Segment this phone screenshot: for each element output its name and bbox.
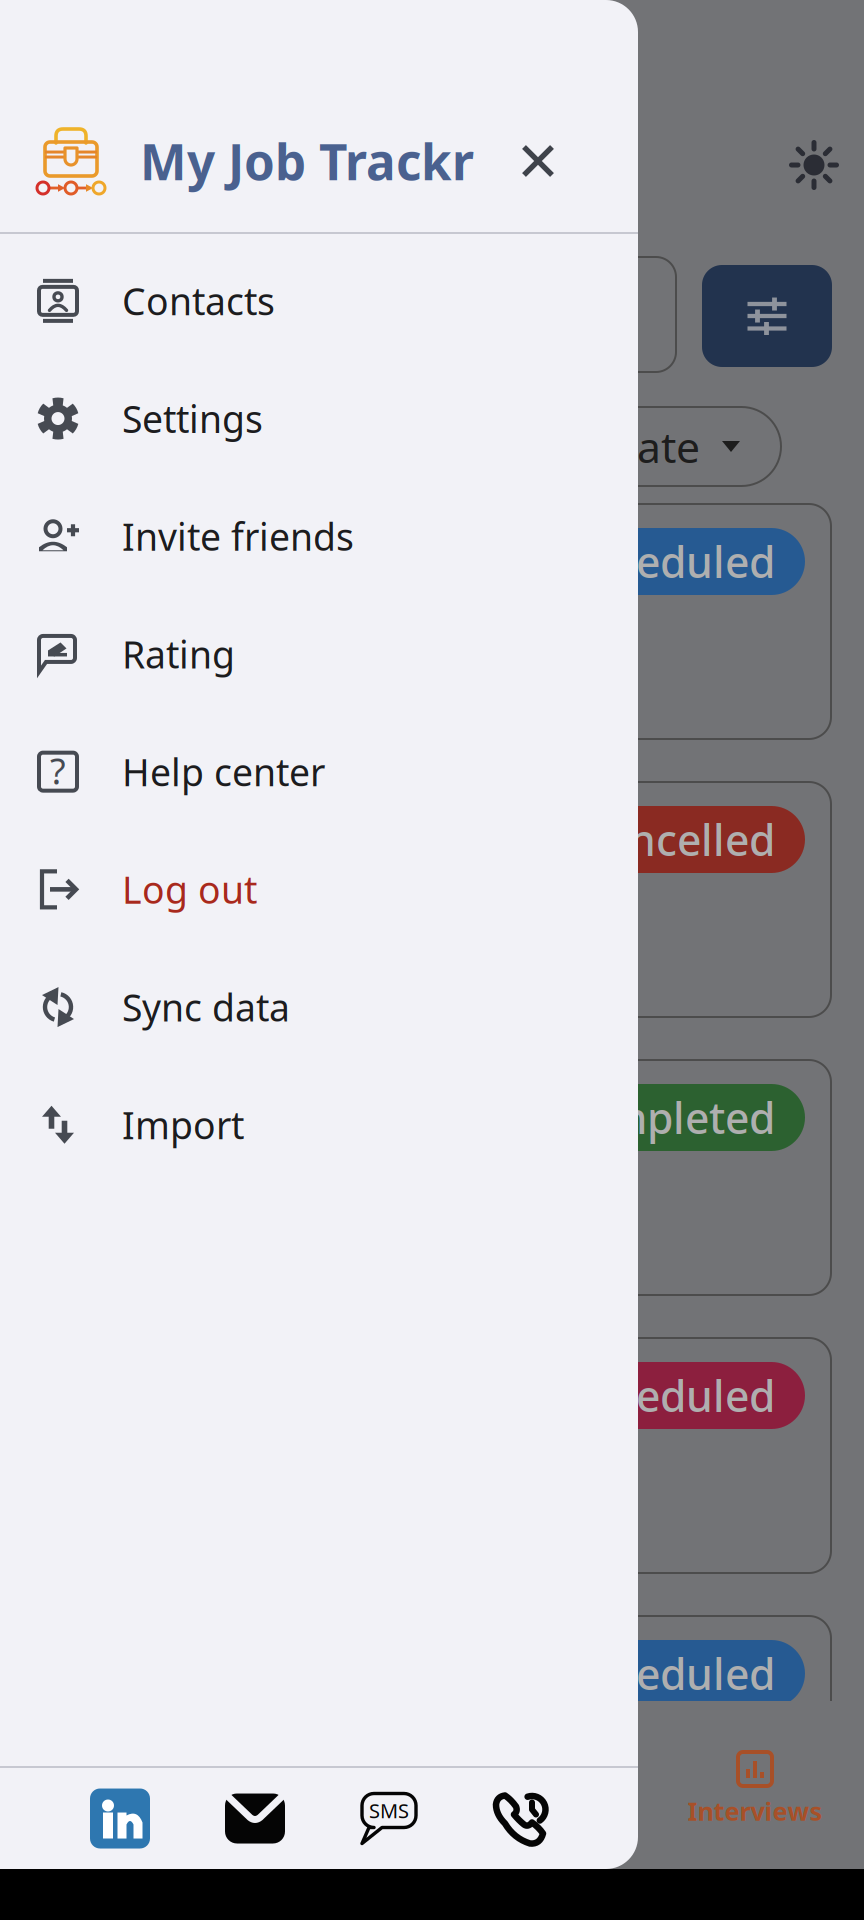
staticText: Scheduled xyxy=(565,533,775,590)
staticText: Contacts xyxy=(122,276,275,326)
staticText: My Job Trackr xyxy=(140,128,474,194)
staticText: Rating xyxy=(122,629,235,679)
staticText: Invite friends xyxy=(122,511,354,561)
button[interactable]: Share by SMS xyxy=(360,1791,418,1845)
button[interactable]: Sync data xyxy=(0,948,638,1066)
button[interactable]: ? xyxy=(0,713,638,830)
staticText: Date xyxy=(606,418,700,475)
staticText: Interviews xyxy=(687,1794,822,1828)
staticText: Log out xyxy=(122,865,257,914)
button[interactable]: Close menu xyxy=(502,125,574,197)
staticText: Help center xyxy=(122,747,325,796)
button[interactable]: Settings xyxy=(0,360,638,477)
staticText: ? xyxy=(50,747,66,794)
button[interactable]: Share by phone call xyxy=(492,1790,548,1846)
button[interactable]: Invite friends xyxy=(0,477,638,595)
staticText: Completed xyxy=(554,1089,775,1146)
staticText: Settings xyxy=(122,394,263,443)
button[interactable]: Import xyxy=(0,1066,638,1184)
staticText: Import xyxy=(122,1100,244,1150)
staticText: Sync data xyxy=(122,982,290,1032)
button[interactable]: Rating xyxy=(0,595,638,713)
button[interactable]: Log out xyxy=(0,830,638,948)
staticText: Rescheduled xyxy=(516,1367,775,1424)
button[interactable]: Contacts xyxy=(0,242,638,360)
staticText: SMS xyxy=(369,1797,409,1824)
button[interactable]: Share on LinkedIn xyxy=(90,1788,150,1848)
button[interactable]: Share by Email xyxy=(224,1791,286,1845)
staticText: Scheduled xyxy=(565,1645,775,1702)
staticText: Cancelled xyxy=(578,811,775,868)
